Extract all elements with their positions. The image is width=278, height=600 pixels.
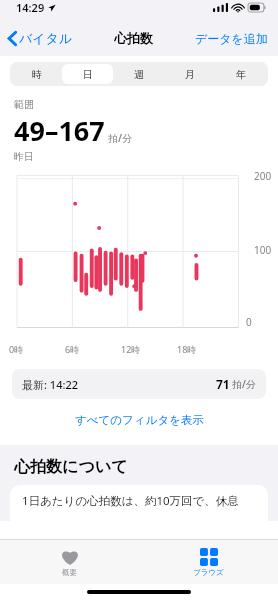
staticText: ブラウズ bbox=[193, 568, 224, 577]
button[interactable]: 週 bbox=[113, 64, 164, 84]
staticText: 概要 bbox=[62, 568, 77, 577]
staticText: すべてのフィルタを表示 bbox=[75, 413, 204, 427]
staticText: 範囲 bbox=[14, 98, 34, 111]
staticText: 49–167 bbox=[14, 112, 105, 149]
staticText: 年 bbox=[236, 68, 246, 81]
staticText: 日 bbox=[83, 68, 93, 81]
staticText: 14:29 bbox=[16, 0, 45, 15]
staticText: 時 bbox=[32, 68, 42, 81]
staticText: 昨日 bbox=[14, 150, 34, 163]
staticText: 心拍数について bbox=[14, 457, 128, 477]
staticText: 拍/分 bbox=[108, 131, 132, 145]
button[interactable]: 時 bbox=[12, 64, 62, 84]
button[interactable]: ブラウズ bbox=[139, 540, 278, 584]
staticText: 100 bbox=[254, 243, 272, 257]
button[interactable]: 年 bbox=[215, 64, 266, 84]
staticText: 0時 bbox=[9, 343, 24, 355]
button[interactable]: 日 bbox=[62, 64, 113, 84]
staticText: データを追加 bbox=[195, 31, 268, 46]
button[interactable]: 概要 bbox=[0, 540, 139, 584]
staticText: 最新: 14:22 bbox=[22, 377, 79, 392]
staticText: 拍/分 bbox=[232, 377, 256, 391]
staticText: 月 bbox=[185, 68, 195, 81]
staticText: 12時 bbox=[121, 343, 141, 355]
staticText: 心拍数 bbox=[114, 30, 153, 46]
button[interactable]: データを追加 bbox=[193, 27, 270, 50]
staticText: 71 bbox=[216, 376, 230, 392]
staticText: 18時 bbox=[177, 343, 197, 355]
staticText: 0 bbox=[246, 315, 252, 329]
staticText: 週 bbox=[134, 68, 144, 81]
button[interactable]: 1日あたりの心拍数は、約10万回で、休息 bbox=[10, 485, 268, 521]
button[interactable]: バイタル bbox=[6, 26, 75, 50]
staticText: 1日あたりの心拍数は、約10万回で、休息 bbox=[22, 493, 239, 509]
button[interactable]: 月 bbox=[164, 64, 215, 84]
staticText: 200 bbox=[254, 169, 272, 183]
button[interactable]: 最新: 14:22 bbox=[12, 369, 266, 399]
staticText: バイタル bbox=[19, 30, 73, 46]
staticText: 6時 bbox=[65, 343, 80, 355]
button[interactable]: すべてのフィルタを表示 bbox=[61, 409, 218, 431]
